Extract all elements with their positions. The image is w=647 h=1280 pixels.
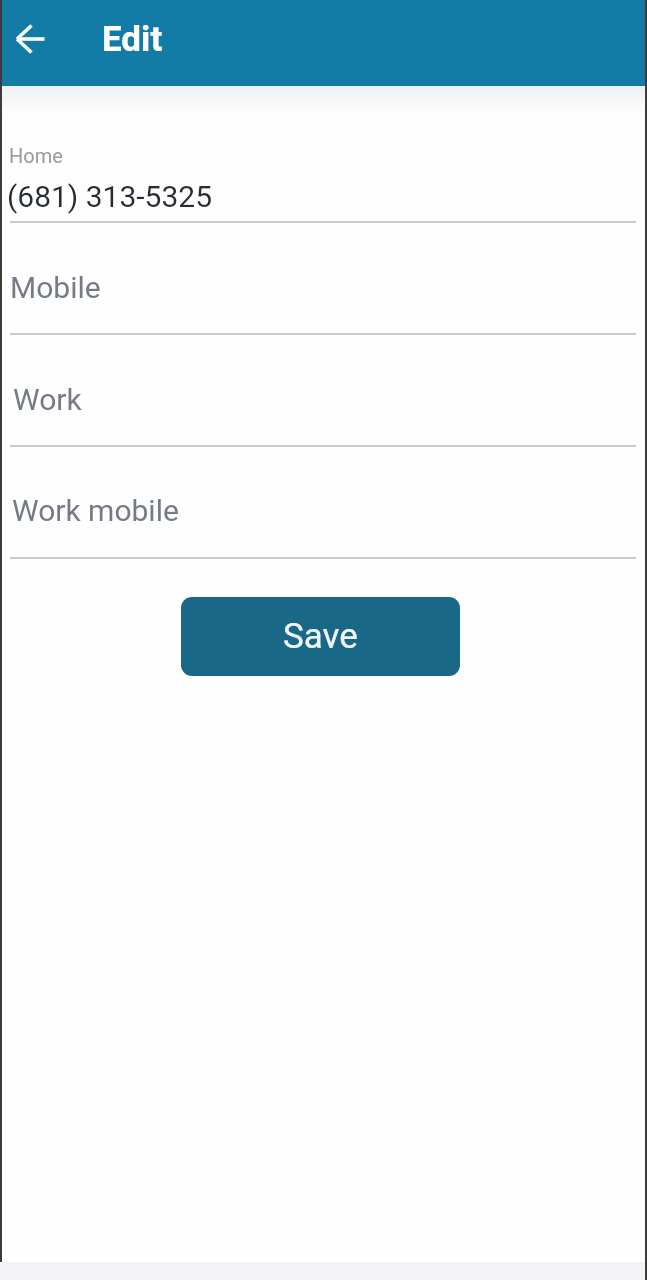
button[interactable]: Save [181,597,460,676]
staticText: Work mobile [12,493,179,528]
button[interactable] [8,16,54,62]
button[interactable]: Home [0,130,647,223]
staticText: Save [283,616,358,657]
button[interactable]: Work [0,354,647,447]
button[interactable]: Work mobile [0,466,647,559]
staticText: Work [13,382,82,417]
staticText: Home [9,144,63,167]
button[interactable]: Mobile [0,242,647,335]
staticText: Edit [102,19,163,60]
staticText: (681) 313-5325 [7,179,213,214]
staticText: Mobile [10,270,101,305]
